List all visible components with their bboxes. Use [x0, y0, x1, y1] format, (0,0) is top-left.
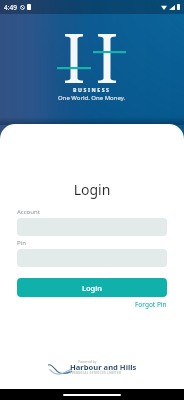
staticText: Forgot Pin [135, 300, 167, 309]
staticText: Account [17, 208, 40, 216]
button[interactable]: Forgot Pin [135, 300, 167, 309]
staticText: One World. One Money. [58, 94, 126, 102]
staticText: BUSINESS [73, 86, 111, 93]
staticText: 4:49 [4, 3, 17, 12]
other: Home [63, 394, 121, 396]
staticText: Powered by [78, 359, 97, 364]
staticText: FINANCIAL SERVICES LIMITED [70, 371, 122, 375]
staticText: Harbour and Hills [70, 362, 137, 372]
staticText: Login [82, 283, 102, 293]
staticText: Login [0, 180, 184, 199]
staticText: Pin [17, 239, 26, 247]
button[interactable]: Login [17, 278, 167, 297]
